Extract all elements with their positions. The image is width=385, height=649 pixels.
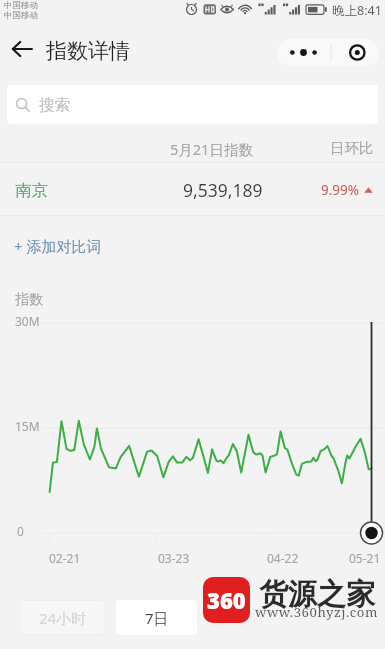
staticText: 指数 <box>15 291 43 309</box>
staticText: 5月21日指数 <box>170 139 253 159</box>
button[interactable]: + 添加对比词 <box>0 216 385 273</box>
staticText: 中国移动 <box>4 0 38 11</box>
staticText: 02-21 <box>49 550 81 566</box>
staticText: 0 <box>17 523 24 539</box>
staticText: 9.99% <box>321 181 360 199</box>
button[interactable]: Back <box>6 33 38 65</box>
staticText: 05-21 <box>349 550 381 566</box>
staticText: 24小时 <box>39 608 87 628</box>
staticText: 360 <box>207 585 246 615</box>
staticText: 搜索 <box>39 95 70 115</box>
staticText: 南京 <box>15 180 48 201</box>
staticText: 日环比 <box>330 139 374 157</box>
button[interactable]: 搜索 <box>7 85 378 124</box>
staticText: 中国移动 <box>4 10 38 21</box>
staticText: 7日 <box>145 608 169 628</box>
staticText: 9,539,189 <box>183 178 263 202</box>
staticText: 指数详情 <box>46 38 130 64</box>
staticText: + 添加对比词 <box>14 236 102 256</box>
staticText: www.360hyzj.com <box>255 603 378 621</box>
staticText: 30M <box>15 313 40 329</box>
staticText: 晚上8:41 <box>332 2 382 19</box>
button[interactable]: More options <box>277 39 379 66</box>
staticText: 15M <box>15 418 40 434</box>
button[interactable]: 南京 <box>0 163 385 215</box>
button[interactable]: 7日 <box>116 600 197 635</box>
staticText: 03-23 <box>158 550 190 566</box>
staticText: 04-22 <box>267 550 299 566</box>
staticText: 货源之家 <box>259 576 375 613</box>
button[interactable]: 24小时 <box>20 600 106 635</box>
